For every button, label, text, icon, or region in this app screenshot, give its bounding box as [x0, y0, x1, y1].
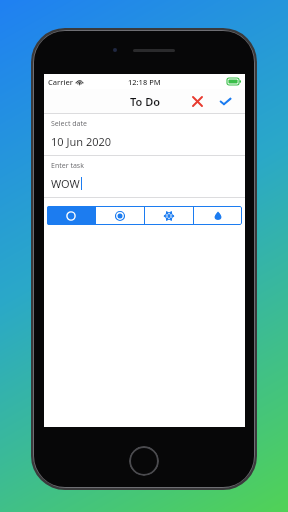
button[interactable]: Off	[47, 206, 95, 225]
staticText: Select date	[51, 119, 87, 129]
button[interactable]: Auto	[96, 206, 144, 225]
staticText: WOW	[51, 176, 80, 191]
staticText: 10 Jun 2020	[51, 134, 112, 149]
staticText: 12:18 PM	[128, 77, 161, 87]
staticText: Carrier	[48, 77, 73, 87]
button[interactable]: Save	[215, 91, 235, 111]
button[interactable]: Select date	[44, 114, 245, 156]
button[interactable]: Cancel	[187, 91, 207, 111]
staticText: Enter task	[51, 161, 84, 171]
button[interactable]: Enter task	[44, 156, 245, 198]
button[interactable]: Heat	[194, 206, 242, 225]
button[interactable]: Cool	[145, 206, 193, 225]
staticText: To Do	[130, 94, 160, 109]
